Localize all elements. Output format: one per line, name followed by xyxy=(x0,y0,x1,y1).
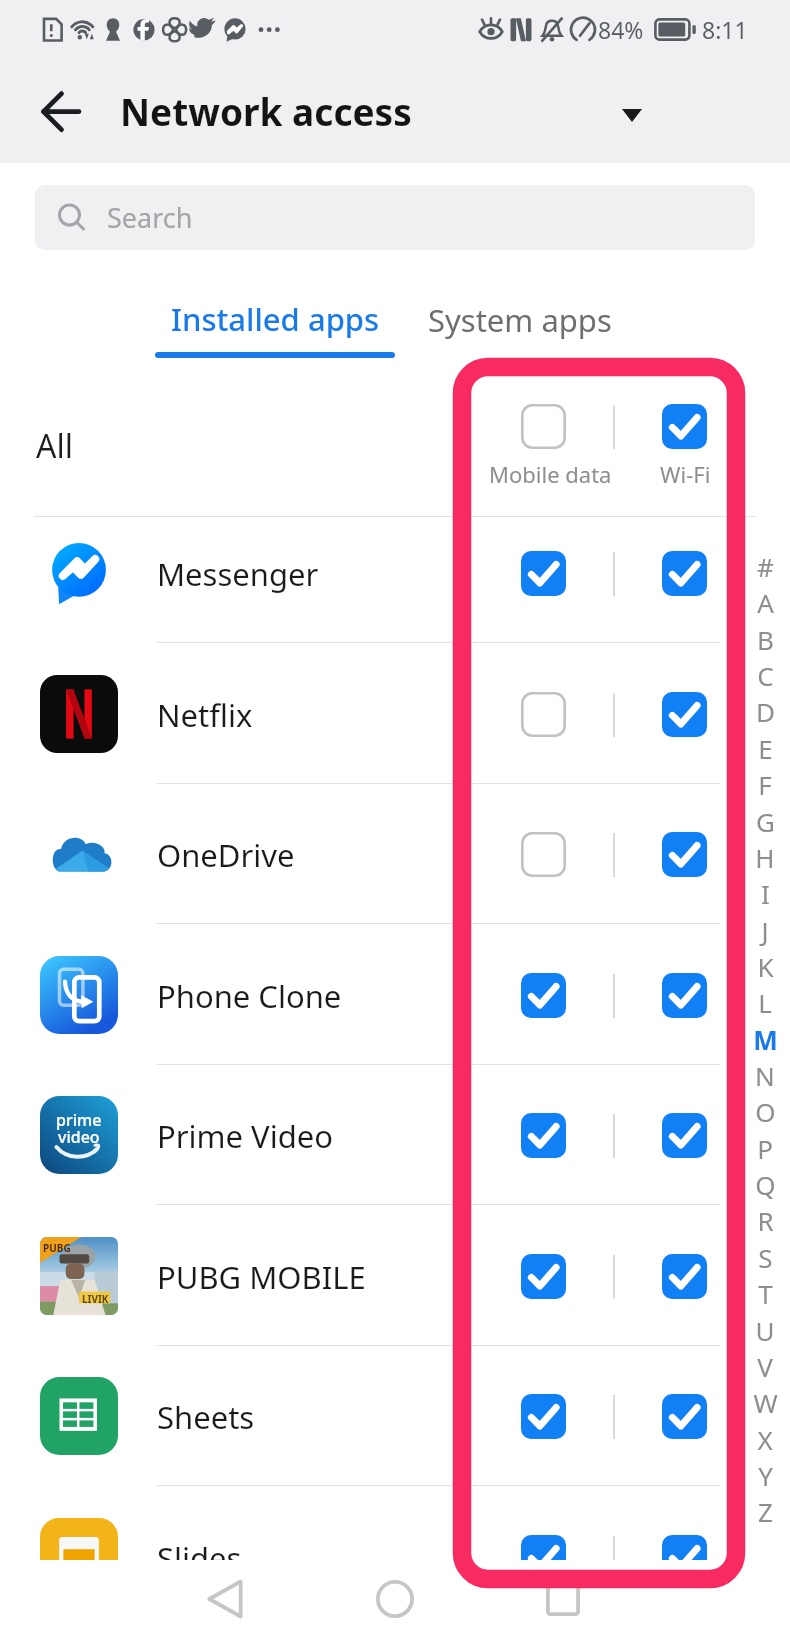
button[interactable]: A xyxy=(740,584,790,621)
staticText: N xyxy=(755,1058,775,1093)
button[interactable]: Disabled xyxy=(521,692,566,737)
button[interactable]: B xyxy=(740,621,790,658)
staticText: prime xyxy=(56,1109,102,1131)
button[interactable]: Enabled xyxy=(521,1535,566,1580)
staticText: C xyxy=(757,658,774,693)
button[interactable]: Enabled xyxy=(662,404,707,449)
button[interactable]: H xyxy=(740,839,790,876)
button[interactable]: Enabled xyxy=(662,1113,707,1158)
staticText: D xyxy=(756,694,775,729)
staticText: J xyxy=(761,913,769,948)
button[interactable]: Messenger xyxy=(0,503,790,644)
button[interactable]: PUBG xyxy=(0,1206,790,1347)
button[interactable]: Q xyxy=(740,1166,790,1203)
button[interactable]: M xyxy=(740,1021,790,1058)
button[interactable]: U xyxy=(740,1312,790,1349)
button[interactable]: Enabled xyxy=(521,1113,566,1158)
button[interactable]: Back xyxy=(181,1558,269,1640)
staticText: 8:11 xyxy=(702,14,748,45)
button[interactable]: Disabled xyxy=(521,832,566,877)
button[interactable]: Enabled xyxy=(521,1254,566,1299)
staticText: Messenger xyxy=(157,553,319,595)
staticText: M xyxy=(753,1022,778,1057)
button[interactable]: prime xyxy=(0,1065,790,1206)
button[interactable]: More options xyxy=(605,88,658,141)
staticText: S xyxy=(758,1240,773,1275)
button[interactable]: D xyxy=(740,693,790,730)
button[interactable]: Enabled xyxy=(662,692,707,737)
staticText: E xyxy=(758,731,773,766)
button[interactable]: Z xyxy=(740,1493,790,1530)
button[interactable]: Search xyxy=(35,185,755,250)
button[interactable]: Installed apps xyxy=(155,298,395,354)
button[interactable]: R xyxy=(740,1202,790,1239)
button[interactable]: Back xyxy=(27,78,95,146)
staticText: X xyxy=(757,1422,773,1457)
staticText: Q xyxy=(755,1167,776,1202)
staticText: Network access xyxy=(120,86,412,136)
button[interactable]: OneDrive xyxy=(0,784,790,925)
button[interactable]: Disabled xyxy=(521,404,566,449)
staticText: Slides xyxy=(157,1537,242,1579)
staticText: U xyxy=(755,1313,775,1348)
button[interactable]: P xyxy=(740,1130,790,1167)
button[interactable]: W xyxy=(740,1384,790,1421)
staticText: R xyxy=(757,1203,774,1238)
button[interactable]: Netflix xyxy=(0,644,790,785)
button[interactable]: O xyxy=(740,1093,790,1130)
staticText: PUBG MOBILE xyxy=(157,1256,366,1298)
button[interactable]: I xyxy=(740,875,790,912)
staticText: Phone Clone xyxy=(157,975,342,1017)
button[interactable]: Recents xyxy=(519,1558,607,1640)
staticText: Wi-Fi xyxy=(660,459,711,489)
staticText: F xyxy=(758,767,772,802)
staticText: Y xyxy=(758,1458,773,1493)
button[interactable]: Sheets xyxy=(0,1346,790,1487)
button[interactable]: S xyxy=(740,1239,790,1276)
button[interactable]: Enabled xyxy=(662,551,707,596)
button[interactable]: L xyxy=(740,984,790,1021)
button[interactable]: # xyxy=(740,548,790,585)
staticText: Sheets xyxy=(157,1396,255,1438)
button[interactable]: Y xyxy=(740,1457,790,1494)
button[interactable]: Enabled xyxy=(662,973,707,1018)
button[interactable]: Enabled xyxy=(662,1394,707,1439)
staticText: Search xyxy=(107,199,193,236)
button[interactable]: F xyxy=(740,766,790,803)
button[interactable]: G xyxy=(740,803,790,840)
staticText: B xyxy=(757,622,774,657)
staticText: Prime Video xyxy=(157,1115,333,1157)
staticText: O xyxy=(755,1094,776,1129)
staticText: W xyxy=(753,1385,778,1420)
staticText: Z xyxy=(758,1494,773,1529)
staticText: L xyxy=(758,985,772,1020)
button[interactable]: Enabled xyxy=(662,1535,707,1580)
button[interactable]: Phone Clone xyxy=(0,925,790,1066)
button[interactable]: V xyxy=(740,1348,790,1385)
staticText: I xyxy=(761,876,770,911)
button[interactable]: Enabled xyxy=(521,973,566,1018)
button[interactable]: Enabled xyxy=(521,1394,566,1439)
staticText: P xyxy=(757,1131,773,1166)
button[interactable]: X xyxy=(740,1421,790,1458)
button[interactable]: N xyxy=(740,1057,790,1094)
button[interactable]: K xyxy=(740,948,790,985)
button[interactable]: Home xyxy=(351,1558,439,1640)
staticText: Installed apps xyxy=(171,298,380,340)
staticText: A xyxy=(757,585,774,620)
button[interactable]: T xyxy=(740,1275,790,1312)
button[interactable]: E xyxy=(740,730,790,767)
button[interactable]: Slides xyxy=(0,1487,790,1628)
staticText: OneDrive xyxy=(157,834,295,876)
staticText: All xyxy=(36,424,73,468)
button[interactable]: Enabled xyxy=(521,551,566,596)
button[interactable]: Enabled xyxy=(662,1254,707,1299)
staticText: Mobile data xyxy=(489,459,612,489)
button[interactable]: C xyxy=(740,657,790,694)
button[interactable]: J xyxy=(740,912,790,949)
staticText: H xyxy=(755,840,775,875)
button[interactable]: Enabled xyxy=(662,832,707,877)
staticText: # xyxy=(757,549,774,584)
button[interactable]: System apps xyxy=(410,299,630,354)
staticText: System apps xyxy=(428,299,612,341)
